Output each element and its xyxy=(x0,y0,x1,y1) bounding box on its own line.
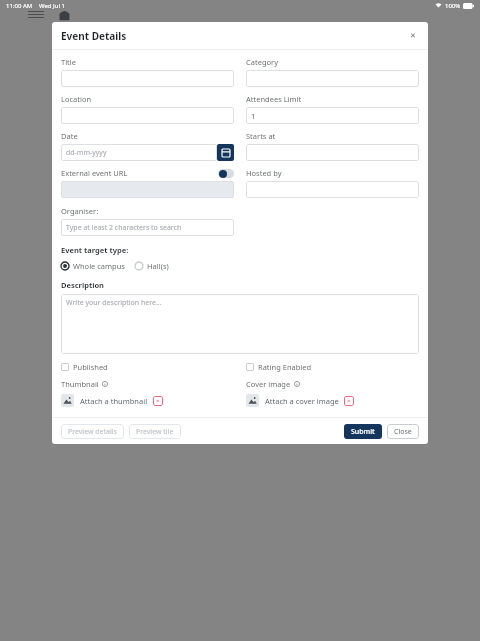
button[interactable]: Rating Enabled xyxy=(246,362,312,372)
staticText: Date xyxy=(61,131,78,141)
button[interactable]: Menu xyxy=(26,9,46,20)
button[interactable] xyxy=(246,70,419,87)
staticText: Preview details xyxy=(68,427,117,437)
button[interactable]: Close xyxy=(387,424,419,439)
staticText: Whole campus xyxy=(73,261,125,271)
button[interactable] xyxy=(61,107,234,124)
staticText: Preview tile xyxy=(136,427,174,437)
button[interactable]: Attach a thumbnail xyxy=(61,394,163,407)
staticText: Location xyxy=(61,94,92,104)
staticText: Category xyxy=(246,57,278,67)
staticText: 1 xyxy=(251,111,256,121)
button[interactable] xyxy=(246,181,419,198)
staticText: Attach a cover image xyxy=(265,396,339,406)
staticText: 11:00 AM xyxy=(6,2,33,10)
staticText: × xyxy=(156,397,160,405)
button[interactable]: Attach a cover image xyxy=(246,394,354,407)
staticText: Title xyxy=(61,57,76,67)
staticText: Attendees Limit xyxy=(246,94,302,104)
button[interactable]: Remove Attach a cover image xyxy=(344,396,354,406)
staticText: Wed Jul 1 xyxy=(39,2,65,10)
staticText: Hall(s) xyxy=(147,261,169,271)
button[interactable]: Write your description here... xyxy=(61,294,419,354)
button[interactable]: 1 xyxy=(246,107,419,124)
button[interactable]: dd-mm-yyyy xyxy=(61,144,217,161)
button[interactable]: Toggle external URL xyxy=(218,169,234,178)
staticText: Cover image xyxy=(246,379,291,389)
button[interactable]: Preview details xyxy=(61,424,124,439)
button[interactable]: Close xyxy=(407,30,419,42)
staticText: Event Details xyxy=(61,29,127,43)
staticText: dd-mm-yyyy xyxy=(66,148,107,158)
button[interactable]: Home xyxy=(58,8,71,21)
button[interactable]: Pick date xyxy=(217,144,234,161)
staticText: Close xyxy=(394,427,412,437)
staticText: External event URL xyxy=(61,168,128,178)
staticText: Write your description here... xyxy=(66,298,162,308)
button[interactable]: Submit xyxy=(344,424,382,439)
button[interactable] xyxy=(61,181,234,198)
staticText: Description xyxy=(61,280,104,290)
button[interactable]: Type at least 2 characters to search xyxy=(61,219,234,236)
button[interactable]: Hall(s) xyxy=(135,261,169,271)
staticText: Event target type: xyxy=(61,245,129,255)
button[interactable] xyxy=(61,70,234,87)
staticText: Organiser: xyxy=(61,206,99,216)
staticText: ✕ xyxy=(410,32,416,40)
staticText: Hosted by xyxy=(246,168,282,178)
button[interactable]: Remove Attach a thumbnail xyxy=(153,396,163,406)
button[interactable]: Preview tile xyxy=(129,424,181,439)
staticText: Published xyxy=(73,362,108,372)
button[interactable]: Whole campus xyxy=(61,261,125,271)
staticText: × xyxy=(347,397,351,405)
button[interactable]: Published xyxy=(61,362,108,372)
staticText: Submit xyxy=(351,427,375,437)
staticText: Thumbnail xyxy=(61,379,99,389)
button[interactable] xyxy=(246,144,419,161)
staticText: 100% xyxy=(445,2,461,10)
staticText: Rating Enabled xyxy=(258,362,312,372)
staticText: Type at least 2 characters to search xyxy=(66,223,182,233)
staticText: Attach a thumbnail xyxy=(80,396,148,406)
staticText: Starts at xyxy=(246,131,276,141)
